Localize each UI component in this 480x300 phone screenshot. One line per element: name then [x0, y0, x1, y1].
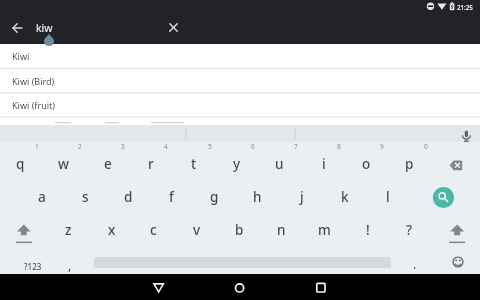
button[interactable]: z	[47, 213, 90, 246]
button[interactable]: x	[90, 213, 133, 246]
staticText: 3	[121, 142, 125, 151]
staticText: t	[191, 155, 197, 173]
button[interactable]	[224, 276, 256, 298]
button[interactable]: ,	[62, 255, 78, 275]
staticText: ?	[406, 221, 413, 239]
button[interactable]: ?123	[11, 256, 55, 276]
button[interactable]: w	[42, 147, 85, 180]
button[interactable]: !	[346, 213, 389, 246]
staticText: i	[322, 155, 326, 173]
staticText: Kiwi	[12, 50, 30, 62]
button[interactable]: v	[175, 213, 218, 246]
staticText: .	[413, 256, 417, 272]
button[interactable]: n	[260, 213, 303, 246]
staticText: v	[193, 221, 201, 239]
staticText: f	[169, 188, 174, 206]
staticText: z	[65, 221, 72, 239]
staticText: w	[58, 155, 69, 173]
button[interactable]	[6, 16, 30, 40]
staticText: Kiwi (Bird)	[12, 75, 55, 87]
staticText: ,	[68, 257, 72, 273]
staticText: 5	[208, 142, 212, 151]
button[interactable]: e	[86, 147, 129, 180]
staticText: 6	[251, 142, 255, 151]
staticText: 1	[35, 142, 39, 151]
button[interactable]: l	[366, 180, 409, 213]
staticText: b	[235, 221, 244, 239]
button[interactable]: f	[150, 180, 193, 213]
button[interactable]	[452, 126, 480, 142]
button[interactable]	[448, 252, 470, 272]
staticText: 0	[424, 142, 428, 151]
staticText: g	[210, 188, 219, 206]
button[interactable]: d	[107, 180, 150, 213]
button[interactable]	[143, 276, 175, 298]
staticText: o	[362, 155, 371, 173]
button[interactable]: u	[258, 147, 301, 180]
button[interactable]	[2, 208, 46, 241]
button[interactable]	[162, 16, 186, 40]
button[interactable]: h	[236, 180, 279, 213]
button[interactable]: t	[172, 147, 215, 180]
button[interactable]: p	[388, 147, 431, 180]
staticText: Kiwi (fruit)	[12, 99, 55, 111]
button[interactable]: a	[20, 180, 63, 213]
button[interactable]	[422, 175, 468, 208]
staticText: m	[318, 221, 331, 239]
button[interactable]: m	[303, 213, 346, 246]
staticText: 21:25	[457, 3, 473, 11]
staticText: c	[150, 221, 157, 239]
staticText: u	[275, 155, 284, 173]
button[interactable]	[434, 208, 480, 241]
staticText: ?123	[24, 261, 42, 272]
button[interactable]: j	[280, 180, 323, 213]
staticText: r	[148, 155, 154, 173]
staticText: n	[277, 221, 286, 239]
button[interactable]: s	[64, 180, 107, 213]
button[interactable]: .	[407, 254, 423, 274]
button[interactable]: r	[129, 147, 172, 180]
staticText: y	[233, 155, 241, 173]
staticText: 9	[380, 142, 384, 151]
button[interactable]: o	[345, 147, 388, 180]
staticText: x	[108, 221, 116, 239]
staticText: e	[104, 155, 112, 173]
staticText: !	[366, 221, 370, 239]
staticText: s	[82, 188, 89, 206]
button[interactable]: i	[302, 147, 345, 180]
button[interactable]: g	[193, 180, 236, 213]
staticText: 4	[164, 142, 168, 151]
button[interactable]: ?	[388, 213, 431, 246]
staticText: kiw	[36, 21, 53, 35]
staticText: 8	[337, 142, 341, 151]
staticText: l	[386, 188, 390, 206]
button[interactable]: q	[0, 147, 42, 180]
staticText: h	[253, 188, 262, 206]
staticText: 7	[294, 142, 298, 151]
staticText: d	[124, 188, 133, 206]
button[interactable]	[305, 276, 337, 298]
button[interactable]: c	[132, 213, 175, 246]
button[interactable]: b	[218, 213, 261, 246]
staticText: p	[405, 155, 414, 173]
staticText: a	[38, 188, 46, 206]
button[interactable]	[434, 142, 480, 175]
staticText: 2	[78, 142, 82, 151]
button[interactable]	[0, 69, 480, 93]
staticText: j	[300, 188, 304, 206]
button[interactable]: k	[323, 180, 366, 213]
button[interactable]: y	[215, 147, 258, 180]
button[interactable]	[0, 93, 480, 117]
button[interactable]	[0, 44, 480, 68]
staticText: k	[341, 188, 349, 206]
staticText: q	[16, 155, 25, 173]
